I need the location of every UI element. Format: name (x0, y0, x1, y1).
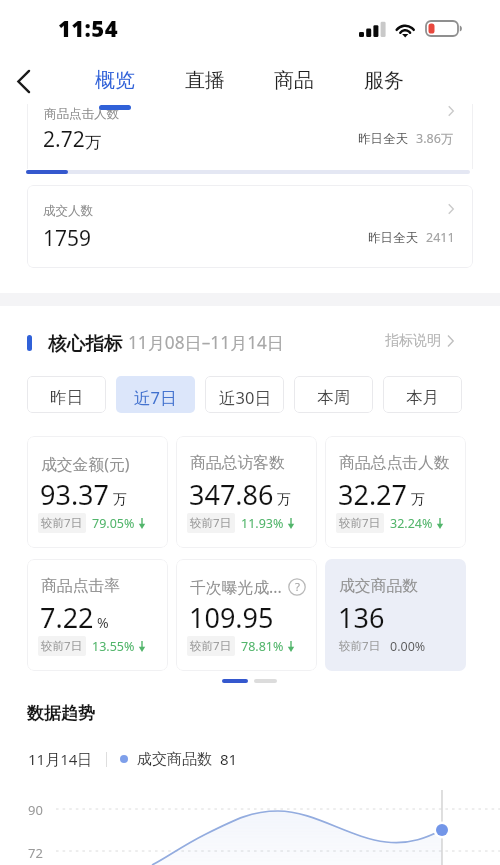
staticText: 近30日 (219, 386, 271, 409)
button[interactable]: 本月 (383, 376, 462, 413)
staticText: 347.86 (189, 476, 274, 513)
staticText: 较前7日 (339, 638, 381, 654)
button[interactable]: 成交商品数 (325, 559, 466, 671)
staticText: 直播 (185, 68, 225, 93)
staticText: 32.27 (338, 476, 408, 513)
staticText: 服务 (364, 68, 404, 93)
staticText: 指标说明 (385, 332, 441, 350)
button[interactable]: 本周 (294, 376, 373, 413)
button[interactable]: 服务 (348, 61, 420, 107)
staticText: 7.22 (40, 599, 94, 636)
staticText: 1759 (43, 224, 92, 253)
staticText: 3.86万 (416, 130, 454, 147)
button[interactable]: 成交金额(元) (27, 436, 168, 548)
staticText: 72 (28, 844, 43, 862)
staticText: 万 (277, 491, 291, 509)
staticText: 79.05% (92, 515, 135, 532)
staticText: 本周 (317, 387, 350, 408)
staticText: 成交商品数 (339, 576, 418, 596)
button[interactable]: 商品点击人数 (27, 96, 473, 169)
staticText: 13.55% (92, 638, 135, 655)
staticText: 136 (338, 599, 385, 636)
staticText: 90 (28, 801, 43, 819)
button[interactable]: 概览 (79, 61, 151, 107)
staticText: 成交商品数 (137, 750, 212, 769)
staticText: 较前7日 (41, 638, 83, 654)
staticText: 昨日全天 (358, 131, 408, 147)
button[interactable]: 商品 (258, 61, 330, 107)
button[interactable]: 商品总访客数 (176, 436, 317, 548)
staticText: 93.37 (40, 476, 110, 513)
staticText: 商品点击率 (41, 576, 120, 596)
staticText: 0.00% (390, 638, 426, 655)
button[interactable]: 指标说明 (385, 332, 454, 350)
staticText: 商品点击人数 (44, 106, 119, 122)
button[interactable]: 成交人数 (27, 185, 473, 268)
staticText: 数据趋势 (27, 703, 95, 724)
staticText: 11月08日–11月14日 (128, 331, 284, 354)
staticText: 近7日 (134, 386, 177, 409)
staticText: 较前7日 (190, 638, 232, 654)
staticText: 万 (85, 132, 102, 153)
staticText: 2.72 (43, 125, 85, 154)
staticText: 万 (113, 491, 127, 509)
button[interactable]: 直播 (169, 61, 241, 107)
button[interactable]: 近30日 (205, 376, 284, 413)
staticText: ? (295, 579, 300, 595)
staticText: 32.24% (390, 515, 433, 532)
staticText: 较前7日 (190, 515, 232, 531)
staticText: 万 (411, 491, 425, 509)
staticText: 千次曝光成... (190, 576, 282, 598)
staticText: 商品总访客数 (190, 453, 285, 473)
button[interactable]: 昨日 (27, 376, 106, 413)
staticText: % (97, 613, 109, 632)
staticText: 11月14日 (28, 749, 93, 769)
button[interactable]: 商品点击率 (27, 559, 168, 671)
staticText: 109.95 (189, 599, 274, 636)
staticText: 核心指标 (48, 332, 123, 355)
staticText: 本月 (406, 387, 439, 408)
staticText: 商品总点击人数 (339, 453, 450, 473)
staticText: 81 (220, 749, 238, 769)
staticText: 成交人数 (43, 203, 93, 219)
staticText: 11:54 (58, 13, 118, 43)
staticText: 商品 (274, 68, 314, 93)
staticText: 昨日全天 (368, 230, 418, 246)
staticText: 概览 (95, 68, 135, 93)
button[interactable]: Back (4, 61, 44, 101)
staticText: 78.81% (241, 638, 284, 655)
staticText: 11.93% (241, 515, 284, 532)
button[interactable]: 千次曝光成... (176, 559, 317, 671)
staticText: 2411 (426, 229, 455, 246)
staticText: 成交金额(元) (41, 453, 130, 475)
staticText: 昨日 (50, 387, 83, 408)
staticText: 较前7日 (339, 515, 381, 531)
staticText: 较前7日 (41, 515, 83, 531)
button[interactable]: 近7日 (116, 376, 195, 413)
button[interactable]: 商品总点击人数 (325, 436, 466, 548)
